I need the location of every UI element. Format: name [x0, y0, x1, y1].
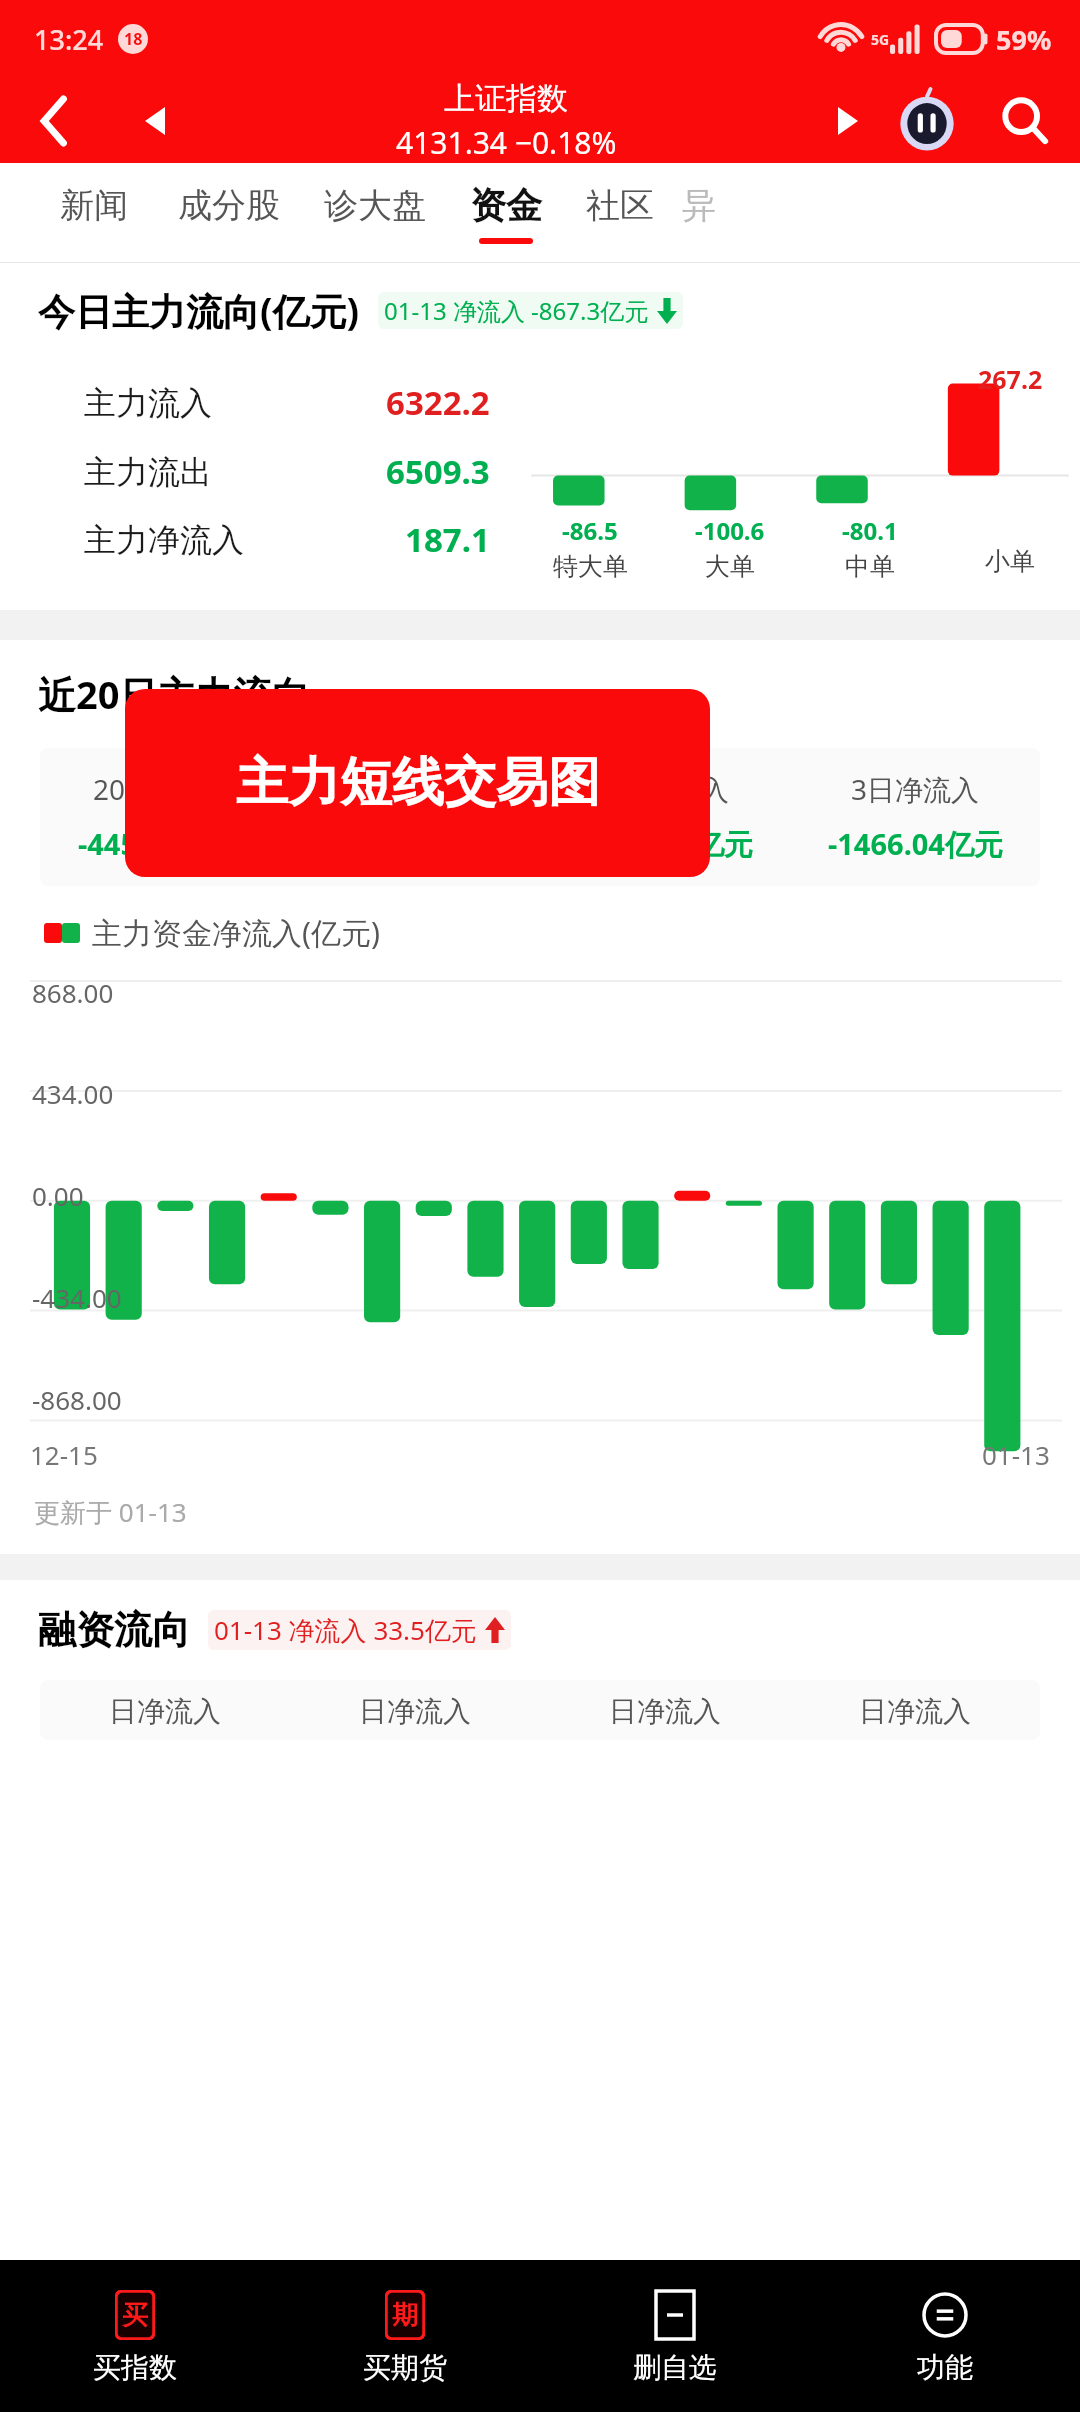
staticText: 小单 — [985, 546, 1035, 577]
staticText: 12-15 — [30, 1437, 98, 1472]
button[interactable]: 期 — [270, 2260, 540, 2412]
staticText: 主力净流入 — [84, 520, 244, 560]
staticText: 6509.3 — [386, 449, 490, 494]
button[interactable]: 诊大盘 — [302, 163, 448, 263]
staticText: 更新于 01-13 — [34, 1494, 187, 1530]
staticText: 买 — [122, 2299, 148, 2332]
staticText: 大单 — [705, 551, 755, 582]
staticText: 4131.34 −0.18% — [396, 122, 617, 163]
staticText: 今日主力流向(亿元) — [38, 285, 360, 336]
staticText: -434.00 — [32, 1280, 122, 1315]
staticText: 中单 — [845, 551, 895, 582]
staticText: 5G — [871, 30, 890, 49]
staticText: 买期货 — [363, 2350, 447, 2385]
staticText: 上证指数 — [444, 79, 568, 118]
staticText: 异 — [682, 184, 716, 227]
staticText: 功能 — [917, 2350, 973, 2385]
staticText: 434.00 — [32, 1076, 114, 1111]
staticText: 诊大盘 — [324, 184, 426, 227]
staticText: 10日净流入 — [343, 770, 488, 808]
staticText: 日净流入 — [859, 1694, 971, 1729]
staticText: 主力流入 — [84, 383, 212, 423]
button[interactable]: Assistant — [884, 78, 970, 163]
button[interactable]: 社区 — [564, 163, 676, 263]
button[interactable]: Next — [812, 78, 884, 163]
staticText: 3日净流入 — [851, 770, 980, 808]
staticText: 0.00 — [32, 1178, 84, 1213]
button[interactable]: 删自选 — [540, 2260, 810, 2412]
button[interactable]: 成分股 — [156, 163, 302, 263]
staticText: 社区 — [586, 184, 654, 227]
staticText: 特大单 — [553, 551, 628, 582]
button[interactable]: Back — [0, 78, 110, 163]
staticText: 01-13 — [982, 1437, 1050, 1472]
staticText: 267.2 — [978, 362, 1043, 396]
staticText: -4454.62亿元 — [78, 824, 253, 864]
staticText: -100.6 — [695, 514, 765, 547]
button[interactable]: 买 — [0, 2260, 270, 2412]
button[interactable]: Search — [970, 78, 1080, 163]
staticText: 买指数 — [93, 2350, 177, 2385]
staticText: 868.00 — [32, 975, 114, 1010]
staticText: 01-13 净流入 -867.3亿元 — [384, 294, 649, 327]
staticText: 20日净流入 — [93, 770, 238, 808]
staticText: 01-13 净流入 33.5亿元 — [214, 1612, 477, 1648]
staticText: 5日净流入 — [601, 770, 730, 808]
button[interactable]: 资金 — [448, 163, 564, 263]
staticText: 资金 — [470, 183, 542, 228]
staticText: 删自选 — [633, 2350, 717, 2385]
button[interactable]: Previous — [110, 78, 200, 163]
staticText: 主力流出 — [84, 452, 212, 492]
staticText: -868.00 — [32, 1382, 122, 1417]
staticText: -86.5 — [562, 514, 618, 547]
staticText: 59% — [996, 21, 1052, 58]
staticText: 日净流入 — [109, 1694, 221, 1729]
staticText: 13:24 — [34, 21, 104, 58]
button[interactable]: 新闻 — [38, 163, 150, 263]
staticText: 新闻 — [60, 184, 128, 227]
staticText: 主力资金净流入(亿元) — [92, 912, 380, 953]
staticText: 日净流入 — [359, 1694, 471, 1729]
button[interactable]: 异 — [676, 163, 722, 263]
staticText: 18 — [124, 28, 143, 50]
staticText: -2006.35亿元 — [578, 824, 753, 864]
staticText: -1466.04亿元 — [828, 824, 1003, 864]
staticText: 融资流向 — [38, 1606, 190, 1654]
staticText: 期 — [392, 2299, 418, 2332]
staticText: -80.1 — [842, 514, 898, 547]
button[interactable]: 主力短线交易图 — [125, 689, 710, 877]
staticText: 187.1 — [405, 517, 490, 562]
staticText: 主力短线交易图 — [236, 750, 600, 816]
staticText: 成分股 — [178, 184, 280, 227]
staticText: 日净流入 — [609, 1694, 721, 1729]
button[interactable]: 功能 — [810, 2260, 1080, 2412]
staticText: 6322.2 — [386, 380, 490, 425]
staticText: 近20日主力流向 — [38, 668, 310, 720]
